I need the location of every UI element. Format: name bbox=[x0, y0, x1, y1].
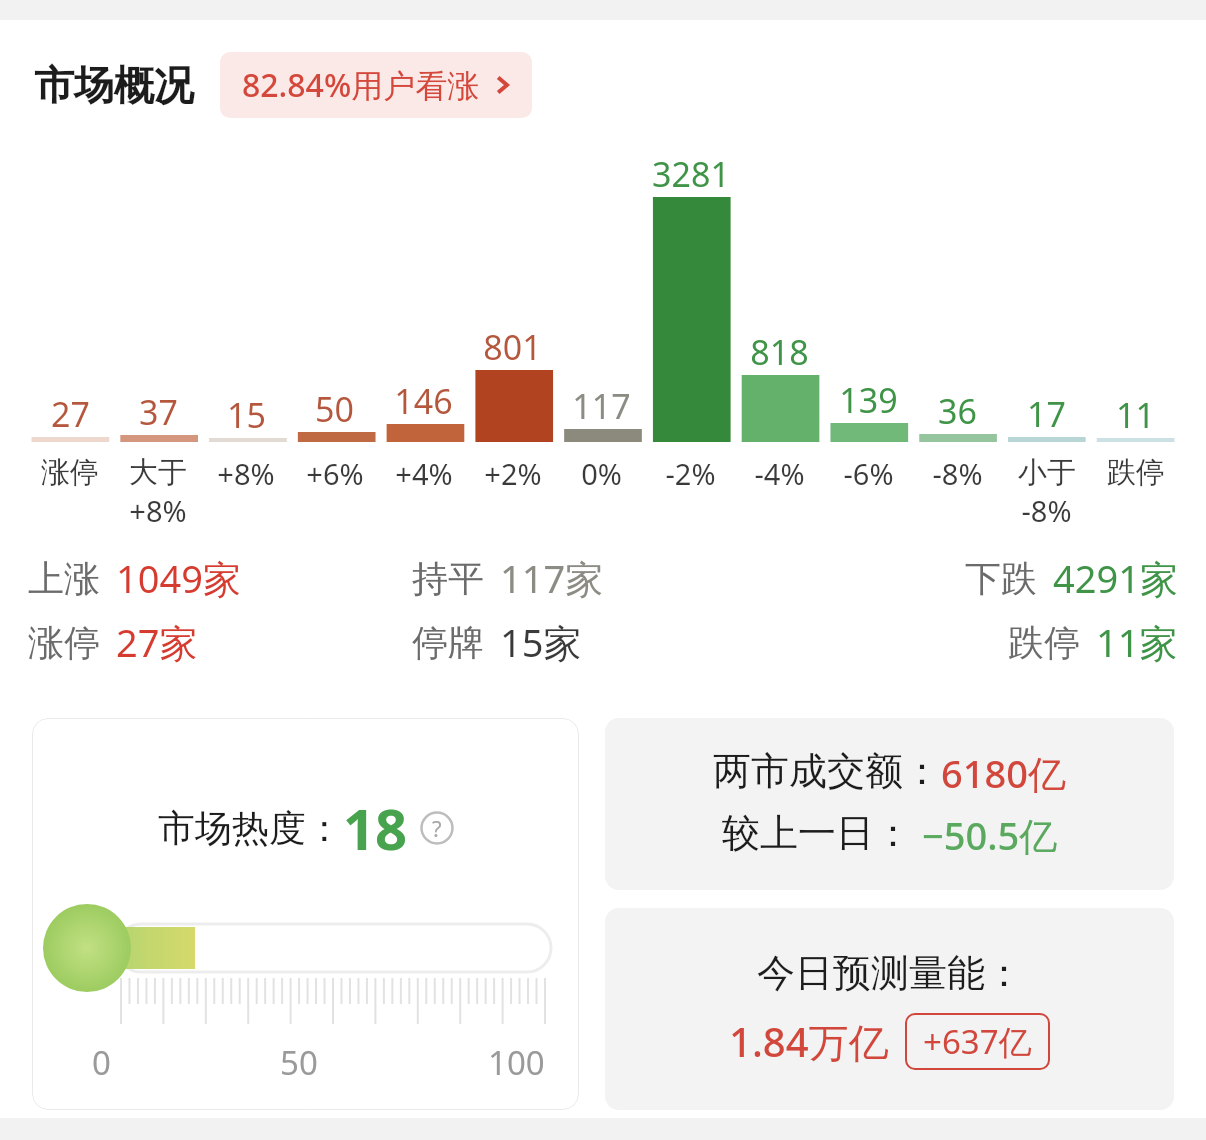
staticText: +8% bbox=[129, 491, 187, 530]
staticText: +4% bbox=[395, 454, 453, 493]
staticText: 818 bbox=[750, 329, 809, 375]
button[interactable]: 82.84%用户看涨 bbox=[220, 52, 532, 118]
staticText: 6180亿 bbox=[941, 747, 1066, 799]
button[interactable]: 市场热度： bbox=[32, 718, 579, 1110]
staticText: 18 bbox=[343, 790, 408, 866]
staticText: 0 bbox=[92, 1040, 111, 1085]
staticText: 1049家 bbox=[116, 552, 241, 604]
staticText: 146 bbox=[394, 378, 453, 424]
staticText: -6% bbox=[843, 454, 894, 493]
staticText: 3281 bbox=[652, 151, 730, 197]
staticText: 大于 bbox=[129, 454, 187, 491]
staticText: -2% bbox=[665, 454, 716, 493]
staticText: +8% bbox=[217, 454, 275, 493]
staticText: 两市成交额： bbox=[713, 747, 941, 795]
staticText: -8% bbox=[1021, 491, 1072, 530]
staticText: 27 bbox=[51, 391, 90, 437]
staticText: 139 bbox=[839, 377, 898, 423]
staticText: 15 bbox=[227, 392, 266, 438]
staticText: -8% bbox=[932, 454, 983, 493]
staticText: 50 bbox=[280, 1040, 318, 1085]
staticText: 11 bbox=[1116, 392, 1155, 438]
staticText: 跌停 bbox=[1008, 620, 1080, 665]
staticText: 100 bbox=[488, 1040, 545, 1085]
staticText: ? bbox=[432, 813, 442, 843]
staticText: 11家 bbox=[1096, 616, 1178, 668]
staticText: 36 bbox=[938, 388, 977, 434]
staticText: 跌停 bbox=[1107, 454, 1165, 491]
staticText: 涨停 bbox=[41, 454, 99, 491]
staticText: 涨停 bbox=[28, 620, 100, 665]
staticText: 0% bbox=[581, 454, 622, 493]
staticText: 市场热度： bbox=[158, 805, 343, 852]
staticText: 上涨 bbox=[28, 556, 100, 601]
staticText: +2% bbox=[484, 454, 542, 493]
staticText: 1.84万亿 bbox=[729, 1014, 889, 1069]
button[interactable]: 今日预测量能： bbox=[605, 908, 1174, 1110]
staticText: −50.5亿 bbox=[912, 809, 1058, 861]
staticText: -4% bbox=[754, 454, 805, 493]
staticText: +6% bbox=[306, 454, 364, 493]
staticText: 停牌 bbox=[412, 620, 484, 665]
button[interactable]: 帮助 bbox=[420, 811, 454, 845]
staticText: 50 bbox=[315, 386, 354, 432]
staticText: 37 bbox=[139, 389, 178, 435]
staticText: +637亿 bbox=[923, 1019, 1032, 1064]
staticText: 下跌 bbox=[965, 556, 1037, 601]
staticText: 较上一日： bbox=[722, 809, 912, 857]
staticText: 27家 bbox=[116, 616, 198, 668]
staticText: 4291家 bbox=[1053, 552, 1178, 604]
staticText: 117 bbox=[572, 383, 631, 429]
staticText: 117家 bbox=[500, 552, 604, 604]
staticText: 17 bbox=[1027, 391, 1066, 437]
staticText: 持平 bbox=[412, 556, 484, 601]
button[interactable]: 两市成交额： bbox=[605, 718, 1174, 890]
staticText: 801 bbox=[483, 324, 542, 370]
staticText: 82.84%用户看涨 bbox=[242, 63, 480, 107]
staticText: 今日预测量能： bbox=[757, 949, 1023, 997]
staticText: 市场概况 bbox=[34, 60, 194, 110]
staticText: 15家 bbox=[500, 616, 582, 668]
staticText: 小于 bbox=[1018, 454, 1076, 491]
